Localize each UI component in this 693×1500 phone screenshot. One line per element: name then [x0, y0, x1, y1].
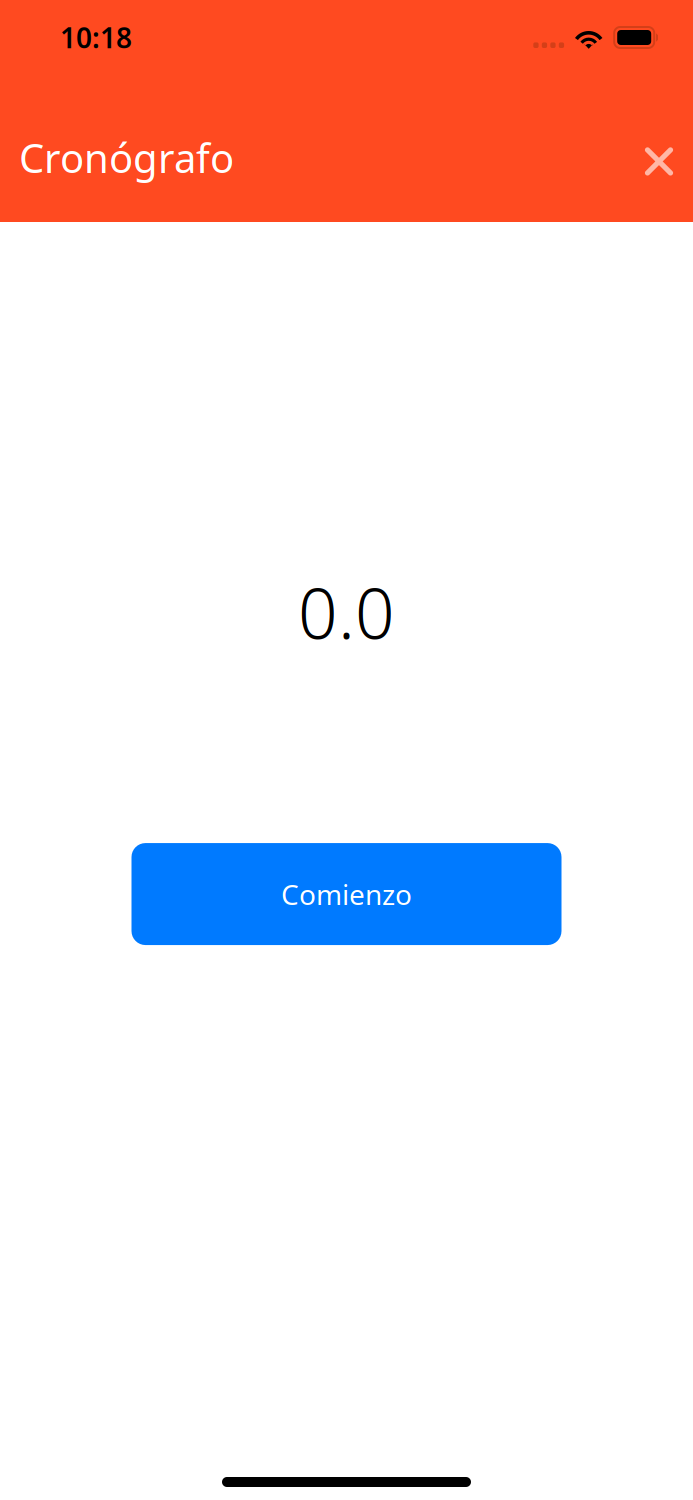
button[interactable]: Close — [635, 133, 683, 181]
button[interactable]: Comienzo — [131, 843, 561, 945]
staticText: 10:18 — [60, 19, 132, 56]
staticText: Comienzo — [281, 875, 412, 913]
staticText: 0.0 — [298, 566, 395, 658]
staticText: Cronógrafo — [19, 131, 234, 184]
